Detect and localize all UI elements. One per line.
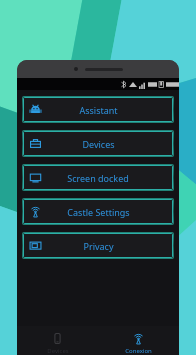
staticText: Conexion (125, 347, 152, 355)
staticText: Castle Settings (67, 206, 130, 218)
staticText: Assistant (79, 104, 118, 116)
button[interactable]: Privacy (23, 233, 173, 258)
button[interactable]: Conexion (98, 326, 179, 355)
button[interactable]: Screen docked (23, 165, 173, 190)
button[interactable]: Devices (23, 131, 173, 156)
staticText: Screen docked (67, 172, 129, 184)
button[interactable]: Devices (17, 326, 98, 355)
button[interactable]: Castle Settings (23, 199, 173, 224)
button[interactable]: Assistant (23, 97, 173, 122)
staticText: Devices (82, 138, 115, 150)
staticText: Privacy (83, 240, 114, 252)
staticText: Devices (47, 347, 69, 355)
